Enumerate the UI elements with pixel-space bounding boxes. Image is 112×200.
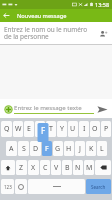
button[interactable]: Q: [1, 121, 12, 137]
button[interactable]: X: [28, 160, 39, 175]
staticText: T: [49, 124, 53, 134]
staticText: Y: [60, 124, 64, 134]
button[interactable]: A: [6, 141, 17, 156]
staticText: I: [83, 124, 86, 134]
button[interactable]: R: [35, 121, 45, 137]
staticText: R: [38, 124, 43, 134]
button[interactable]: Shift: [1, 160, 15, 175]
button[interactable]: Back: [0, 9, 13, 22]
staticText: 13:58: [95, 1, 110, 8]
staticText: W: [15, 124, 22, 134]
staticText: Nouveau message: [17, 12, 67, 20]
button[interactable]: Send: [94, 101, 110, 117]
staticText: F: [41, 125, 46, 136]
button[interactable]: W: [13, 121, 23, 137]
staticText: X: [31, 163, 36, 173]
staticText: N: [75, 163, 81, 173]
staticText: Q: [4, 124, 10, 134]
staticText: O: [92, 124, 98, 134]
staticText: E: [27, 124, 31, 134]
staticText: U: [70, 124, 76, 134]
staticText: S: [22, 144, 26, 154]
button[interactable]: O: [90, 121, 100, 137]
button[interactable]: T: [46, 121, 56, 137]
button[interactable]: Y: [57, 121, 67, 137]
staticText: H: [66, 144, 72, 154]
button[interactable]: M: [84, 160, 94, 175]
button[interactable]: N: [73, 160, 83, 175]
staticText: J: [79, 144, 81, 154]
button[interactable]: Add attachment: [2, 103, 14, 115]
button[interactable]: D: [30, 141, 41, 156]
button[interactable]: Emoji: [15, 179, 27, 194]
button[interactable]: Space: [28, 179, 85, 194]
staticText: B: [65, 163, 70, 173]
button[interactable]: Add contact: [96, 27, 109, 40]
staticText: L: [100, 144, 104, 154]
button[interactable]: F: [42, 141, 52, 156]
button[interactable]: H: [64, 141, 74, 156]
staticText: G: [55, 144, 61, 154]
button[interactable]: V: [51, 160, 61, 175]
staticText: K: [89, 144, 94, 154]
staticText: Entrez le nom ou le numéro de la personn…: [4, 25, 96, 41]
button[interactable]: Search: [86, 179, 111, 194]
button[interactable]: U: [68, 121, 78, 137]
staticText: Z: [19, 163, 24, 173]
button[interactable]: J: [75, 141, 85, 156]
button[interactable]: P: [101, 121, 111, 137]
staticText: Search: [91, 184, 106, 190]
staticText: V: [54, 163, 59, 173]
button[interactable]: G: [53, 141, 63, 156]
staticText: C: [43, 163, 48, 173]
staticText: P: [104, 124, 109, 134]
button[interactable]: L: [97, 141, 107, 156]
button[interactable]: B: [62, 160, 72, 175]
staticText: 123: [4, 184, 12, 190]
staticText: A: [9, 144, 14, 154]
staticText: F: [45, 144, 49, 154]
staticText: M: [86, 163, 93, 173]
button[interactable]: I: [79, 121, 89, 137]
button[interactable]: C: [40, 160, 50, 175]
button[interactable]: 123: [1, 179, 14, 194]
button[interactable]: S: [18, 141, 29, 156]
button[interactable]: E: [24, 121, 34, 137]
button[interactable]: Backspace: [95, 160, 111, 175]
staticText: Entrez le message texte: [14, 103, 82, 111]
staticText: D: [33, 144, 39, 154]
button[interactable]: K: [86, 141, 96, 156]
button[interactable]: Z: [16, 160, 27, 175]
